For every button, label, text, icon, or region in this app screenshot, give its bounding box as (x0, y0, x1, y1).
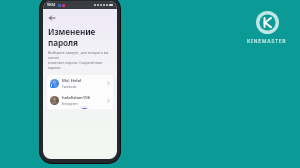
staticText: Facebook (62, 85, 77, 89)
staticText: Instagram (62, 102, 78, 106)
staticText: Изменение пароля (48, 26, 112, 48)
staticText: Выберите аккаунт, для которого вы хотите… (48, 50, 111, 70)
staticText: 10:14 (47, 3, 56, 7)
button[interactable]: helalislam106 (47, 92, 113, 109)
button[interactable]: Back (46, 12, 57, 23)
button[interactable]: f (47, 75, 113, 92)
staticText: Md. Helal (62, 78, 82, 84)
staticText: KINEMASTER (247, 37, 287, 44)
staticText: f (51, 84, 53, 88)
button[interactable]: Autofill (80, 106, 88, 109)
staticText: helalislam106 (62, 95, 91, 101)
